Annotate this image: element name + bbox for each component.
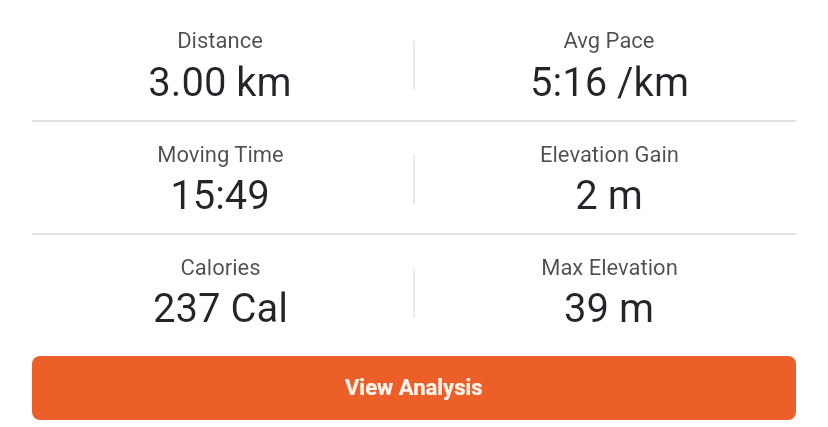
button[interactable]: View Analysis [32, 356, 796, 420]
staticText: 39 m [564, 285, 654, 332]
staticText: Max Elevation [541, 255, 678, 281]
staticText: Elevation Gain [540, 142, 679, 168]
staticText: 237 Cal [153, 285, 288, 332]
staticText: 2 m [575, 172, 643, 219]
staticText: Calories [180, 255, 261, 281]
staticText: Avg Pace [563, 28, 655, 54]
staticText: 3.00 km [148, 59, 292, 106]
staticText: Distance [177, 28, 263, 54]
staticText: 15:49 [170, 172, 270, 219]
staticText: 5:16 /km [530, 59, 689, 106]
staticText: View Analysis [345, 375, 483, 401]
staticText: Moving Time [157, 142, 284, 168]
